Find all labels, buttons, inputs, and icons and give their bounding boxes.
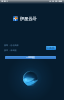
staticText: 线路：自动选择 <box>4 44 19 47</box>
button[interactable]: 一键连接 <box>5 56 56 59</box>
staticText: 一键连接 <box>26 56 35 59</box>
button[interactable]: 伊星云斗 <box>13 4 64 33</box>
staticText: 切换线路 <box>46 46 56 50</box>
staticText: 状态：未连接 <box>4 49 17 52</box>
staticText: 伊星云斗 <box>20 16 37 21</box>
button[interactable]: 切换线路 <box>46 46 56 50</box>
